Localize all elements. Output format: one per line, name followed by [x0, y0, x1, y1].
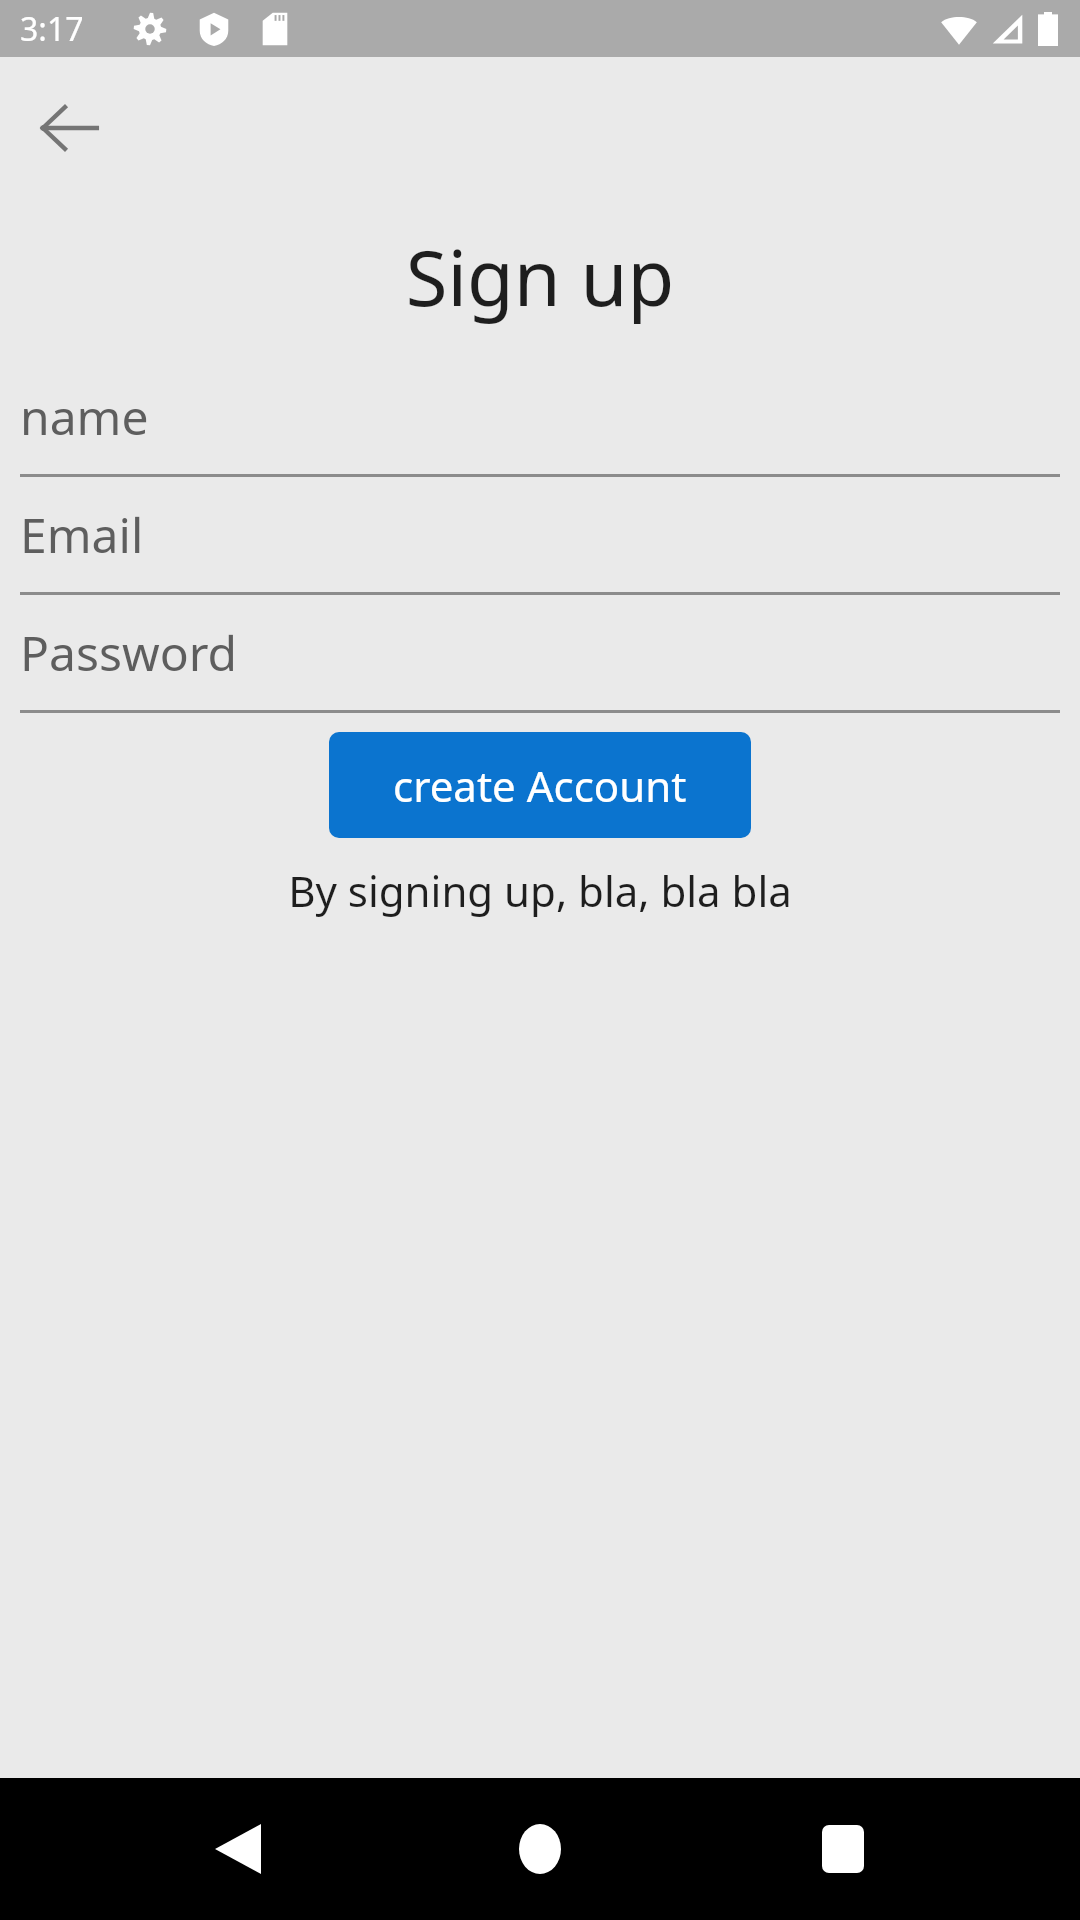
staticText: name — [20, 384, 149, 449]
button[interactable]: Back — [173, 1784, 303, 1914]
button[interactable]: name — [0, 359, 1080, 477]
button[interactable]: create Account — [329, 732, 751, 838]
button[interactable]: Email — [0, 477, 1080, 595]
staticText: Email — [20, 502, 144, 567]
button[interactable]: Back — [26, 85, 112, 171]
staticText: By signing up, bla, bla bla — [0, 862, 1080, 919]
staticText: Password — [20, 620, 238, 685]
button[interactable]: Password — [0, 595, 1080, 713]
button[interactable]: Recent apps — [778, 1784, 908, 1914]
button[interactable]: Home — [475, 1784, 605, 1914]
staticText: Sign up — [0, 225, 1080, 329]
staticText: 3:17 — [20, 7, 84, 51]
staticText: create Account — [393, 757, 687, 814]
